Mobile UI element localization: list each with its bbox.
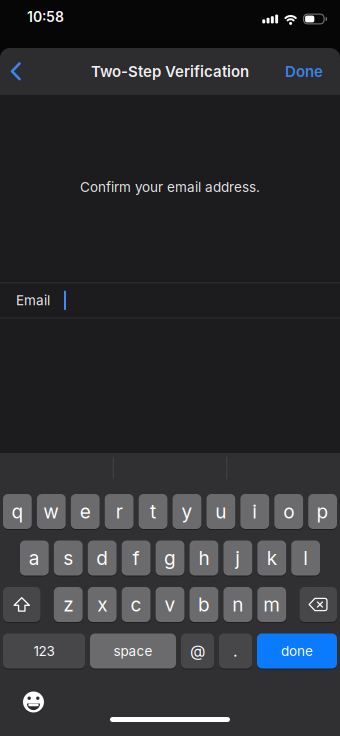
button[interactable]: Delete [299, 587, 337, 622]
staticText: b [198, 593, 210, 616]
button[interactable]: t [139, 494, 167, 529]
staticText: Confirm your email address. [80, 179, 260, 195]
button[interactable]: h [189, 540, 218, 575]
button[interactable]: y [173, 494, 201, 529]
button[interactable]: done [257, 633, 337, 668]
button[interactable]: . [219, 633, 252, 668]
staticText: n [232, 593, 243, 616]
button[interactable]: k [257, 540, 286, 575]
button[interactable]: q [3, 494, 32, 529]
staticText: p [317, 500, 329, 523]
staticText: c [131, 593, 142, 616]
button[interactable]: z [54, 587, 83, 622]
staticText: m [263, 593, 280, 616]
staticText: v [164, 593, 175, 616]
staticText: d [96, 546, 108, 569]
button[interactable]: m [257, 587, 286, 622]
button[interactable]: 123 [3, 633, 85, 668]
button[interactable]: x [88, 587, 117, 622]
staticText: r [116, 500, 123, 523]
staticText: f [133, 546, 140, 569]
button[interactable]: d [88, 540, 117, 575]
button[interactable]: a [20, 540, 49, 575]
button[interactable]: c [122, 587, 150, 622]
staticText: Done [285, 62, 323, 80]
button[interactable]: Back [0, 62, 30, 81]
staticText: s [63, 546, 73, 569]
button[interactable]: Done [285, 62, 340, 80]
staticText: g [164, 546, 176, 569]
button[interactable]: o [274, 494, 303, 529]
staticText: o [283, 500, 294, 523]
button[interactable]: p [308, 494, 337, 529]
button[interactable]: g [156, 540, 184, 575]
staticText: y [181, 500, 192, 523]
staticText: i [252, 500, 257, 523]
staticText: 10:58 [27, 8, 64, 25]
button[interactable]: u [206, 494, 235, 529]
staticText: 123 [33, 643, 54, 659]
staticText: q [11, 500, 23, 523]
staticText: @ [190, 641, 205, 661]
staticText: l [303, 546, 308, 569]
staticText: u [215, 500, 226, 523]
button[interactable]: l [291, 540, 320, 575]
staticText: a [29, 546, 40, 569]
button[interactable]: b [189, 587, 218, 622]
staticText: space [113, 643, 152, 659]
button[interactable]: space [90, 633, 176, 668]
button[interactable]: w [37, 494, 66, 529]
button[interactable]: i [240, 494, 269, 529]
button[interactable]: Emoji [0, 668, 44, 712]
staticText: . [233, 641, 238, 661]
staticText: z [63, 593, 73, 616]
button[interactable]: Email text field [0, 283, 340, 317]
button[interactable]: r [105, 494, 133, 529]
button[interactable]: v [156, 587, 184, 622]
button[interactable]: f [122, 540, 150, 575]
staticText: done [281, 643, 313, 659]
staticText: w [43, 500, 59, 523]
button[interactable]: @ [181, 633, 214, 668]
staticText: x [97, 593, 107, 616]
staticText: Two-Step Verification [91, 62, 249, 80]
staticText: Email [16, 292, 50, 308]
staticText: e [80, 500, 91, 523]
staticText: t [150, 500, 156, 523]
staticText: j [235, 546, 240, 569]
button[interactable]: Shift [3, 587, 40, 622]
staticText: h [198, 546, 209, 569]
button[interactable]: n [223, 587, 252, 622]
button[interactable]: s [54, 540, 83, 575]
staticText: k [267, 546, 277, 569]
button[interactable]: e [71, 494, 100, 529]
button[interactable]: j [223, 540, 252, 575]
